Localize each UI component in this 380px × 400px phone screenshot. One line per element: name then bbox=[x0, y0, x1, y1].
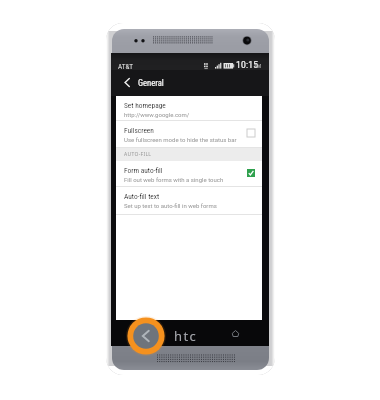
button[interactable]: Auto-fill text bbox=[116, 187, 262, 215]
other: Navigate up bbox=[124, 78, 130, 87]
staticText: Set homepage bbox=[124, 101, 166, 110]
button[interactable]: Home bbox=[226, 324, 244, 342]
staticText: htc bbox=[174, 327, 198, 345]
staticText: 10:15 bbox=[236, 60, 259, 70]
button[interactable]: Fullscreen bbox=[116, 121, 262, 148]
button[interactable]: Set homepage bbox=[116, 96, 262, 121]
staticText: AM bbox=[254, 64, 262, 69]
staticText: General bbox=[138, 78, 164, 88]
staticText: Fill out web forms with a single touch bbox=[124, 176, 224, 183]
staticText: Set up text to auto-fill in web forms bbox=[124, 202, 217, 209]
staticText: Form auto-fill bbox=[124, 166, 163, 175]
staticText: Auto-fill text bbox=[124, 192, 160, 201]
button[interactable]: Back bbox=[126, 316, 166, 356]
staticText: Fullscreen bbox=[124, 126, 154, 135]
staticText: Use fullscreen mode to hide the status b… bbox=[124, 136, 237, 143]
button[interactable]: Form auto-fill bbox=[116, 161, 262, 187]
button[interactable]: Navigate up bbox=[111, 70, 269, 96]
staticText: http://www.google.com/ bbox=[124, 111, 190, 118]
staticText: AUTO-FILL bbox=[124, 151, 152, 158]
staticText: AT&T bbox=[118, 62, 134, 70]
